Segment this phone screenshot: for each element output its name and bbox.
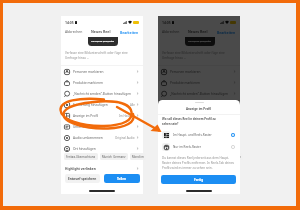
staticText: Highlight verlinken [162, 167, 193, 171]
button[interactable]: Ort hinzufügen [61, 143, 143, 154]
button[interactable]: Anzeige im Profil [61, 110, 143, 121]
button[interactable]: Im Haupt- und Reels-Raster [158, 129, 240, 141]
staticText: Audio umbenennen [170, 136, 200, 140]
staticText: Neues Reel [188, 29, 208, 34]
staticText: Fertig [194, 178, 204, 182]
button[interactable]: Produkte markieren [158, 77, 240, 88]
button[interactable]: Teilen [201, 174, 237, 183]
staticText: Entwurf speichern [68, 177, 97, 181]
staticText: Mond im Dezember [132, 155, 144, 158]
button[interactable]: Entwurf speichern [65, 174, 100, 183]
button[interactable]: Erinnerung hinzufügen [61, 99, 143, 110]
staticText: Verfasse eine Bildunterschrift oder füge… [162, 51, 225, 59]
staticText: Ort hinzufügen [170, 147, 193, 151]
staticText: 14:05 [65, 20, 74, 25]
staticText: Anzeige im Profil [73, 114, 99, 118]
button[interactable]: Bearbeiten [217, 30, 236, 34]
button[interactable]: Ort hinzufügen [158, 143, 240, 154]
staticText: Untertitel hinzufügen [73, 125, 106, 129]
button[interactable]: Teilen [104, 174, 140, 183]
button[interactable]: Untertitel hinzufügen [61, 121, 143, 132]
button[interactable]: Audio umbenennen [61, 132, 143, 143]
staticText: Teilen [117, 177, 127, 181]
button[interactable]: Abbrechen [162, 29, 180, 34]
staticText: 14:05 [162, 20, 171, 25]
staticText: Thumbnail bearbeiten [188, 40, 212, 43]
button[interactable]: Erinnerung hinzufügen [158, 99, 240, 110]
staticText: Erinnerung hinzufügen [73, 103, 108, 107]
button[interactable]: Untertitel hinzufügen [158, 121, 240, 132]
staticText: Audio umbenennen [73, 136, 103, 140]
staticText: Personen markieren [170, 70, 201, 74]
staticText: Anzeige im Profil [170, 114, 196, 118]
button[interactable]: Personen markieren [158, 66, 240, 77]
staticText: Produkte markieren [73, 81, 103, 85]
button[interactable]: Personen markieren [61, 66, 143, 77]
staticText: Verfasse eine Bildunterschrift oder füge… [65, 51, 128, 59]
staticText: Mond im Dezember [229, 155, 241, 158]
staticText: „Nachricht senden“-Button hinzufügen [170, 92, 228, 96]
staticText: Freitag-Übernachtung [66, 155, 96, 158]
button[interactable]: Bearbeiten [120, 30, 139, 34]
button[interactable]: Freitag-Übernachtung [161, 153, 195, 160]
button[interactable]: Highlight verlinken [61, 164, 143, 173]
button[interactable]: Entwurf speichern [162, 174, 197, 183]
button[interactable]: Mond im Dezember [227, 153, 243, 160]
staticText: Anzeige im Profil [186, 107, 212, 111]
staticText: Im Haupt... [216, 114, 232, 118]
button[interactable]: Freitag-Übernachtung [64, 153, 98, 160]
staticText: Im Haupt- und Reels-Raster [173, 133, 212, 137]
staticText: Thumbnail bearbeiten [91, 40, 115, 43]
button[interactable]: Mond im Dezember [130, 153, 146, 160]
staticText: Wo soll dieses Reel in deinem Profil zu … [162, 117, 216, 126]
staticText: Munich, Germany [199, 155, 223, 158]
button[interactable]: Highlight verlinken [158, 164, 240, 173]
button[interactable]: Anzeige im Profil [158, 110, 240, 121]
button[interactable]: Thumbnail bearbeiten [185, 37, 215, 46]
staticText: Original Audio [212, 136, 232, 140]
staticText: Abbrechen [162, 29, 180, 34]
button[interactable]: „Nachricht senden“-Button hinzufügen [158, 88, 240, 99]
staticText: Highlight verlinken [65, 167, 96, 171]
staticText: Ort hinzufügen [73, 147, 96, 151]
staticText: Neues Reel [91, 29, 111, 34]
staticText: Im Haupt... [119, 114, 135, 118]
staticText: „Nachricht senden“-Button hinzufügen [73, 92, 131, 96]
staticText: Nur im Reels-Raster [173, 145, 201, 149]
staticText: Bearbeiten [120, 30, 139, 34]
staticText: Alle [130, 103, 135, 107]
button[interactable]: Thumbnail bearbeiten [88, 37, 118, 46]
staticText: Freitag-Übernachtung [163, 155, 193, 158]
button[interactable]: Munich, Germany [100, 153, 128, 160]
staticText: Produkte markieren [170, 81, 200, 85]
staticText: Bearbeiten [217, 30, 236, 34]
button[interactable]: Fertig [161, 175, 236, 184]
button[interactable]: Munich, Germany [197, 153, 225, 160]
staticText: Abbrechen [65, 29, 83, 34]
button[interactable]: Abbrechen [65, 29, 83, 34]
staticText: Original Audio [115, 136, 135, 140]
staticText: Munich, Germany [102, 155, 126, 158]
staticText: Du kannst dieses Reel jederzeit aus dem … [162, 156, 235, 170]
button[interactable]: Produkte markieren [61, 77, 143, 88]
button[interactable]: Nur im Reels-Raster [158, 141, 240, 153]
button[interactable]: Audio umbenennen [158, 132, 240, 143]
button[interactable]: „Nachricht senden“-Button hinzufügen [61, 88, 143, 99]
staticText: Personen markieren [73, 70, 104, 74]
